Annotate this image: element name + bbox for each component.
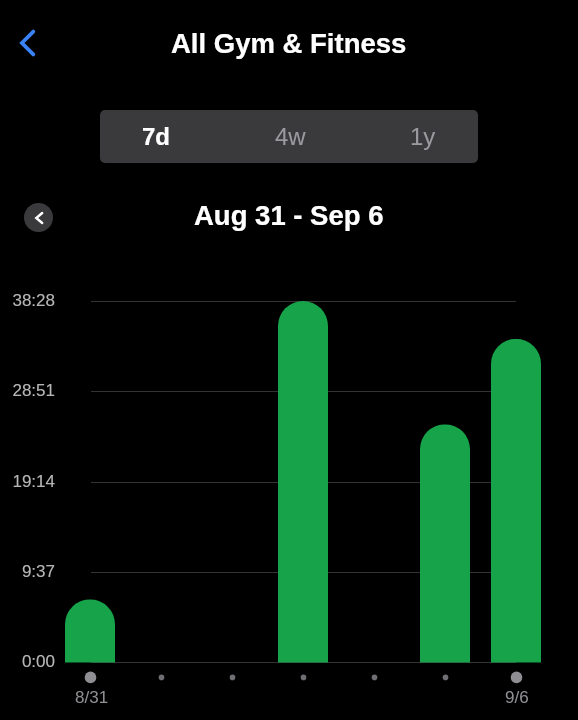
staticText: 28:51 [0,381,55,400]
staticText: All Gym & Fitness [171,28,407,59]
staticText: 19:14 [0,472,55,491]
staticText: 38:28 [0,291,55,310]
button[interactable]: 1y [398,110,448,163]
staticText: 4w [275,123,306,150]
staticText: 7d [142,123,171,150]
button[interactable]: 7d [130,110,183,163]
staticText: Aug 31 - Sep 6 [194,200,384,231]
button[interactable]: 4w [263,110,318,163]
button[interactable]: Previous week [24,203,53,232]
staticText: 1y [410,123,436,150]
staticText: 0:00 [0,652,55,671]
staticText: 9/6 [505,688,529,707]
staticText: 8/31 [75,688,109,707]
button[interactable]: Back [2,19,52,69]
staticText: 9:37 [0,562,55,581]
